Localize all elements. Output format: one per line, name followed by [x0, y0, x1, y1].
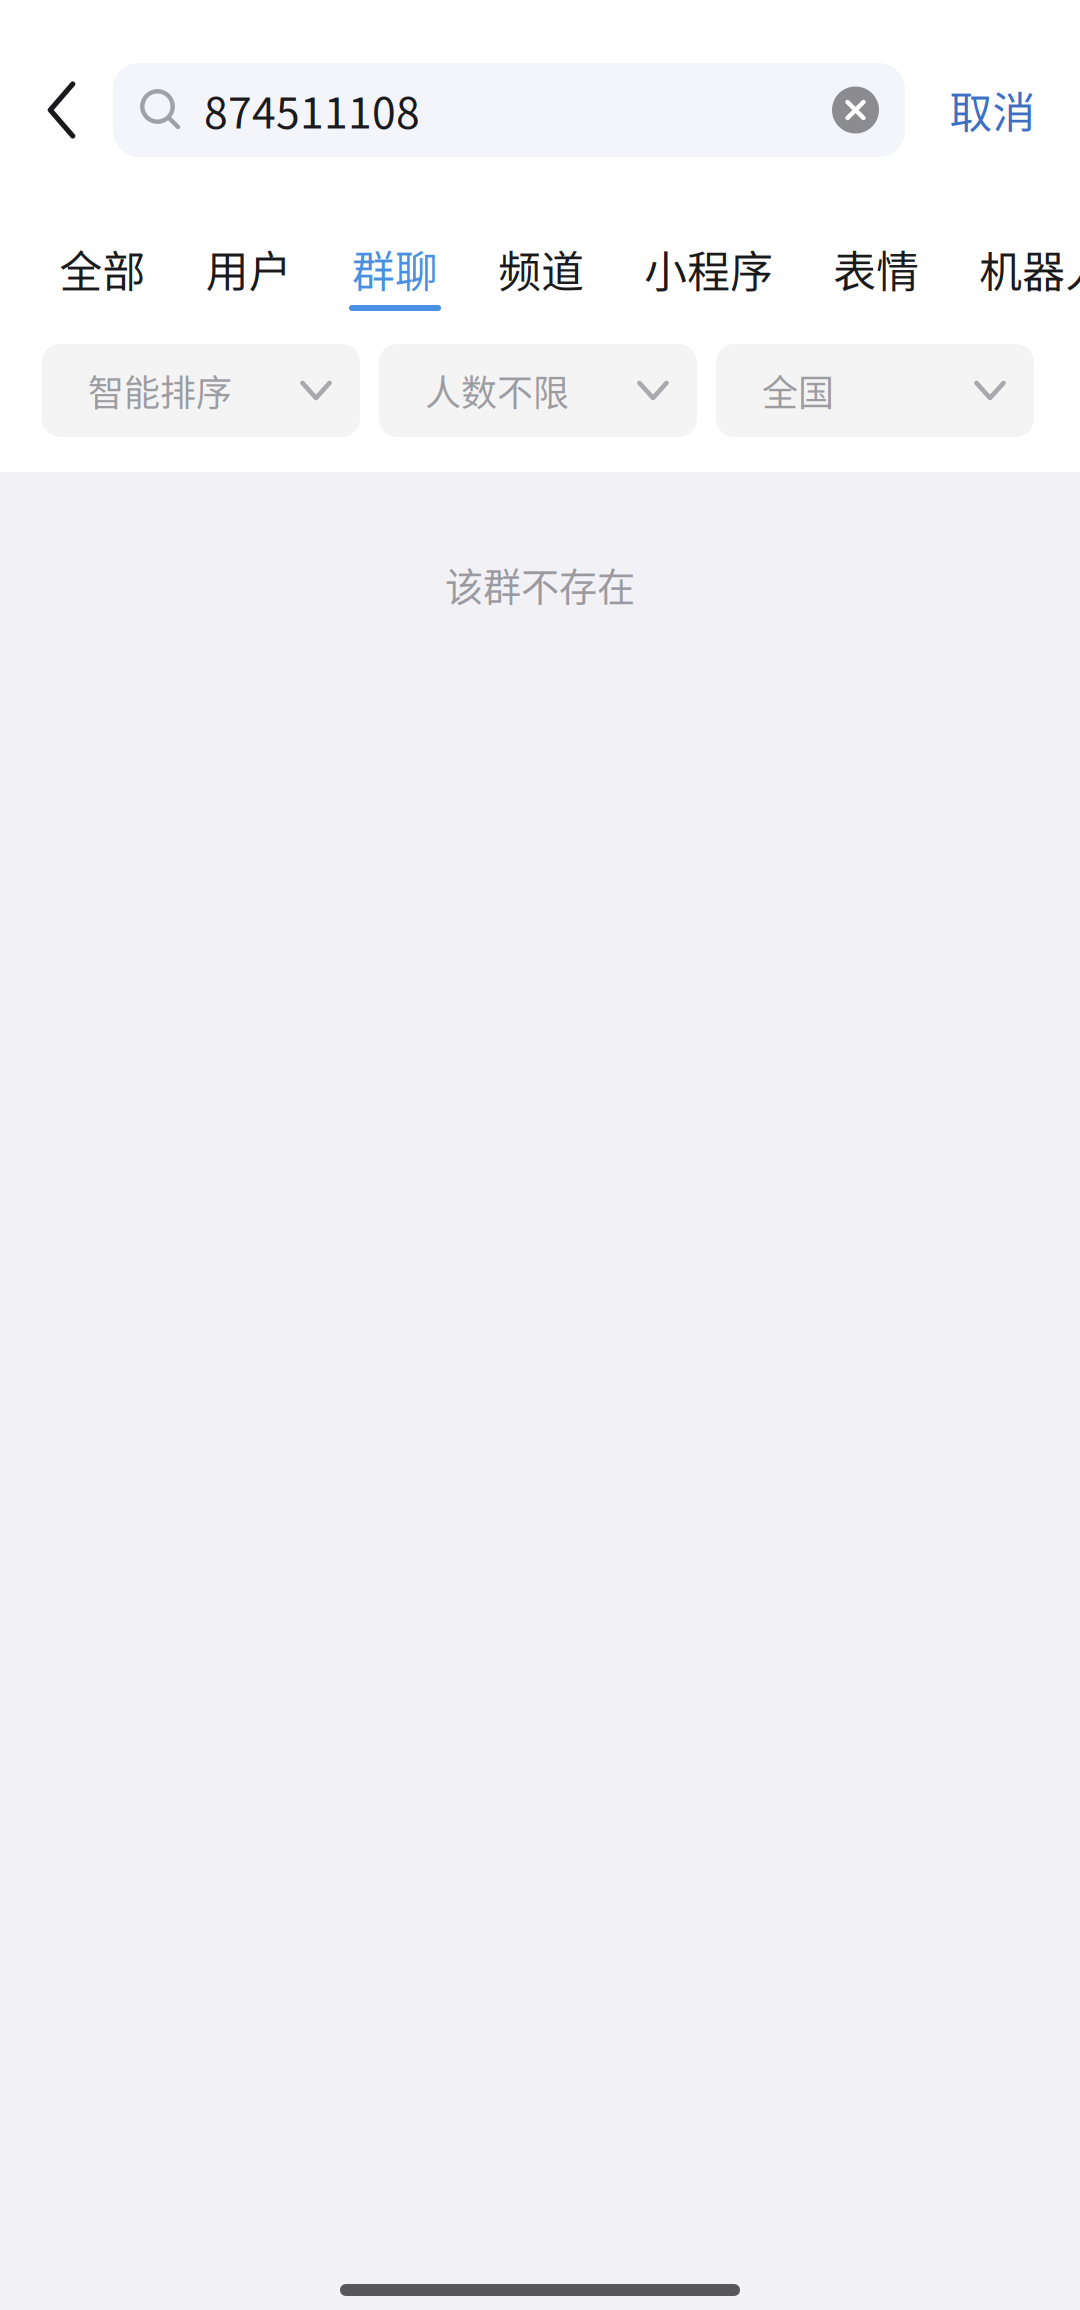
staticText: 频道: [498, 238, 584, 300]
staticText: 群聊: [352, 238, 438, 300]
button[interactable]: 人数不限: [379, 344, 697, 437]
staticText: 该群不存在: [445, 557, 635, 612]
button[interactable]: 小程序: [645, 247, 773, 311]
button[interactable]: Clear text: [832, 86, 905, 133]
staticText: 874511108: [204, 79, 420, 141]
staticText: 全国: [762, 364, 834, 416]
staticText: 表情: [833, 238, 919, 300]
button[interactable]: 表情: [834, 247, 919, 311]
button[interactable]: 智能排序: [42, 344, 360, 437]
staticText: 人数不限: [425, 364, 569, 416]
button[interactable]: Back: [0, 63, 101, 157]
button[interactable]: 全部: [60, 247, 145, 311]
staticText: 智能排序: [88, 364, 232, 416]
staticText: 取消: [949, 79, 1035, 141]
staticText: 全部: [60, 238, 146, 300]
button[interactable]: 取消: [905, 63, 1080, 157]
button[interactable]: 机器人: [980, 247, 1080, 311]
staticText: 小程序: [644, 238, 773, 300]
button[interactable]: 群聊: [352, 247, 438, 311]
button[interactable]: 频道: [499, 247, 584, 311]
staticText: 机器人: [979, 238, 1080, 300]
button[interactable]: 用户: [206, 247, 291, 311]
button[interactable]: 全国: [716, 344, 1034, 437]
staticText: 用户: [206, 238, 292, 300]
